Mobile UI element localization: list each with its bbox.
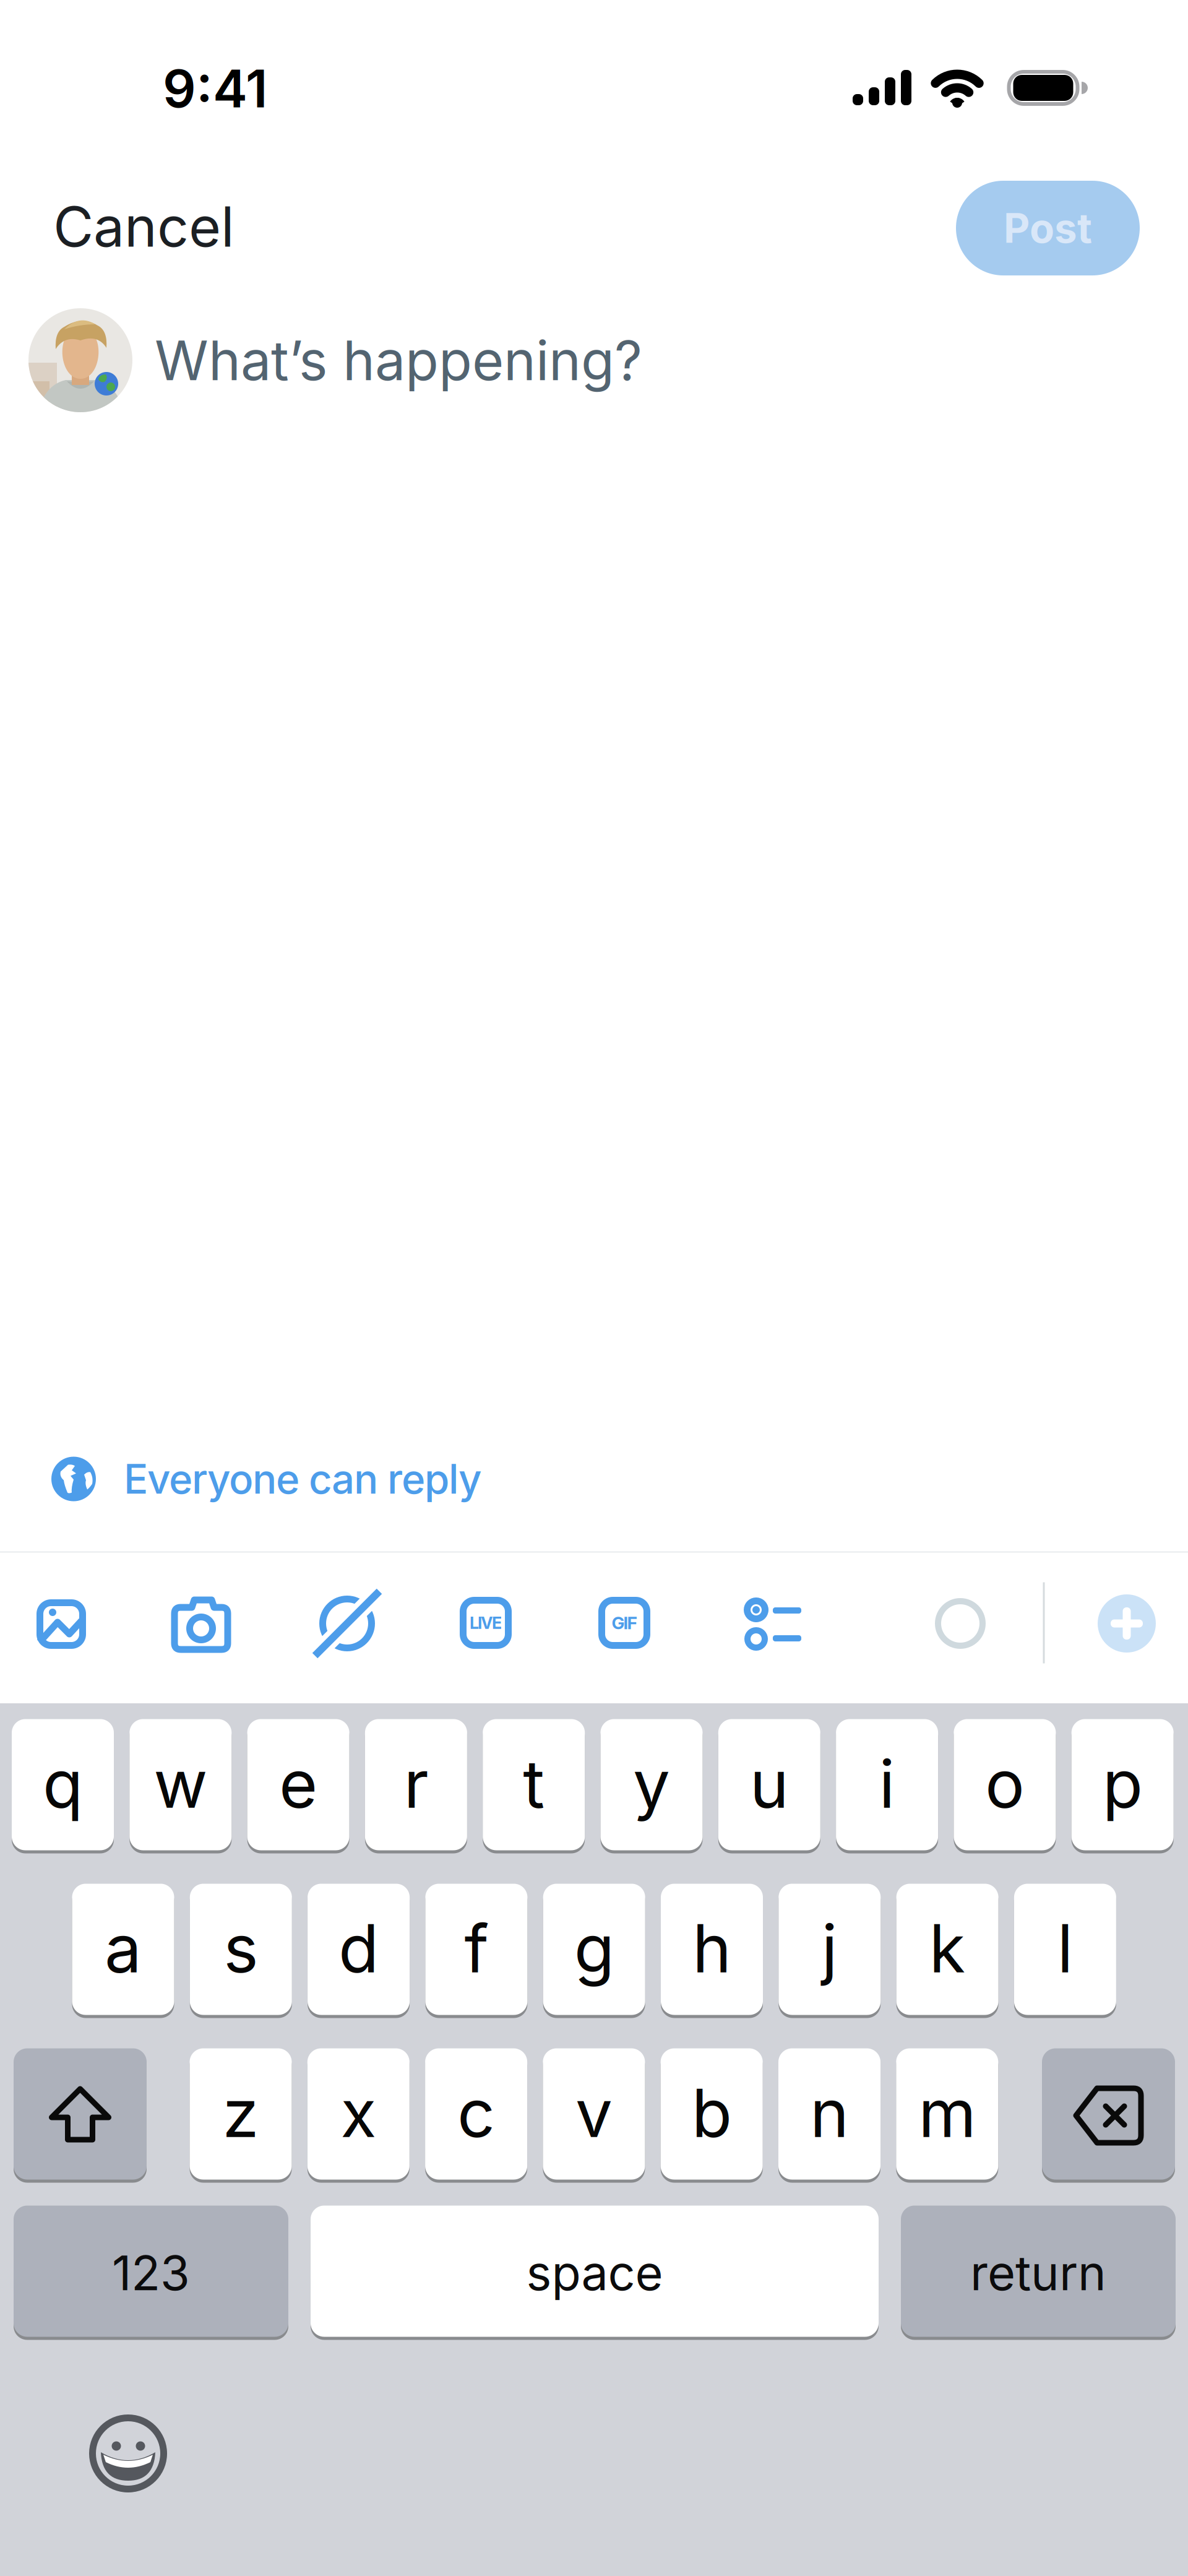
staticText: space: [526, 2244, 663, 2302]
staticText: r: [404, 1744, 428, 1824]
staticText: q: [43, 1744, 83, 1824]
button[interactable]: Photos: [35, 1598, 87, 1650]
staticText: o: [985, 1744, 1025, 1824]
button[interactable]: Go Live: [460, 1597, 512, 1649]
button[interactable]: Delete: [1042, 2050, 1175, 2181]
button[interactable]: j: [779, 1885, 881, 2016]
button[interactable]: i: [836, 1721, 938, 1852]
staticText: 9:41: [163, 57, 268, 120]
staticText: return: [970, 2244, 1106, 2302]
staticText: y: [633, 1744, 670, 1824]
staticText: What’s happening?: [155, 327, 642, 393]
staticText: Everyone can reply: [124, 1454, 482, 1503]
button[interactable]: z: [190, 2050, 292, 2181]
staticText: b: [692, 2073, 732, 2153]
staticText: g: [574, 1908, 614, 1988]
button[interactable]: q: [12, 1721, 114, 1852]
staticText: e: [279, 1744, 317, 1824]
button[interactable]: 123: [14, 2207, 288, 2338]
button[interactable]: l: [1014, 1885, 1116, 2016]
button[interactable]: b: [661, 2050, 763, 2181]
button[interactable]: p: [1071, 1721, 1174, 1852]
staticText: j: [822, 1908, 838, 1988]
staticText: u: [750, 1744, 789, 1824]
button[interactable]: r: [365, 1721, 467, 1852]
button[interactable]: c: [425, 2050, 527, 2181]
button[interactable]: f: [425, 1885, 527, 2016]
button[interactable]: Post: [956, 181, 1140, 275]
button[interactable]: Camera: [173, 1595, 230, 1651]
staticText: z: [222, 2073, 259, 2153]
staticText: n: [810, 2073, 849, 2153]
staticText: v: [575, 2073, 613, 2153]
button[interactable]: e: [247, 1721, 349, 1852]
button[interactable]: s: [190, 1885, 292, 2016]
button[interactable]: Add: [1098, 1594, 1156, 1653]
button[interactable]: t: [483, 1721, 585, 1852]
button[interactable]: d: [308, 1885, 410, 2016]
staticText: i: [879, 1744, 895, 1824]
button[interactable]: o: [954, 1721, 1056, 1852]
button[interactable]: Cancel: [53, 193, 235, 260]
button[interactable]: x: [307, 2050, 409, 2181]
button[interactable]: h: [661, 1885, 763, 2016]
staticText: LIVE: [470, 1613, 502, 1633]
staticText: Cancel: [53, 193, 235, 260]
staticText: l: [1057, 1908, 1073, 1988]
button[interactable]: m: [896, 2050, 998, 2181]
staticText: Post: [1004, 204, 1092, 253]
button[interactable]: w: [130, 1721, 232, 1852]
staticText: a: [105, 1908, 142, 1988]
staticText: d: [339, 1908, 379, 1988]
staticText: p: [1102, 1744, 1143, 1824]
button[interactable]: u: [718, 1721, 820, 1852]
button[interactable]: Everyone can reply: [51, 1454, 482, 1503]
button[interactable]: Poll: [736, 1596, 798, 1651]
button[interactable]: Spaces: [315, 1591, 379, 1656]
button[interactable]: a: [72, 1885, 174, 2016]
button[interactable]: Shift: [14, 2050, 147, 2181]
staticText: w: [154, 1744, 207, 1824]
staticText: c: [457, 2073, 495, 2153]
button[interactable]: v: [543, 2050, 645, 2181]
staticText: t: [523, 1744, 545, 1824]
staticText: s: [224, 1908, 258, 1988]
staticText: h: [692, 1908, 731, 1988]
staticText: 123: [112, 2244, 190, 2302]
button[interactable]: GIF: [598, 1597, 650, 1649]
button[interactable]: Emoji: [89, 2414, 167, 2492]
staticText: k: [929, 1908, 966, 1988]
button[interactable]: space: [311, 2207, 879, 2338]
staticText: GIF: [612, 1612, 637, 1633]
button[interactable]: n: [778, 2050, 880, 2181]
staticText: x: [340, 2073, 376, 2153]
button[interactable]: y: [600, 1721, 703, 1852]
staticText: f: [464, 1908, 488, 1988]
button[interactable]: g: [543, 1885, 645, 2016]
staticText: m: [918, 2073, 976, 2153]
button[interactable]: return: [901, 2207, 1176, 2338]
button[interactable]: k: [896, 1885, 998, 2016]
